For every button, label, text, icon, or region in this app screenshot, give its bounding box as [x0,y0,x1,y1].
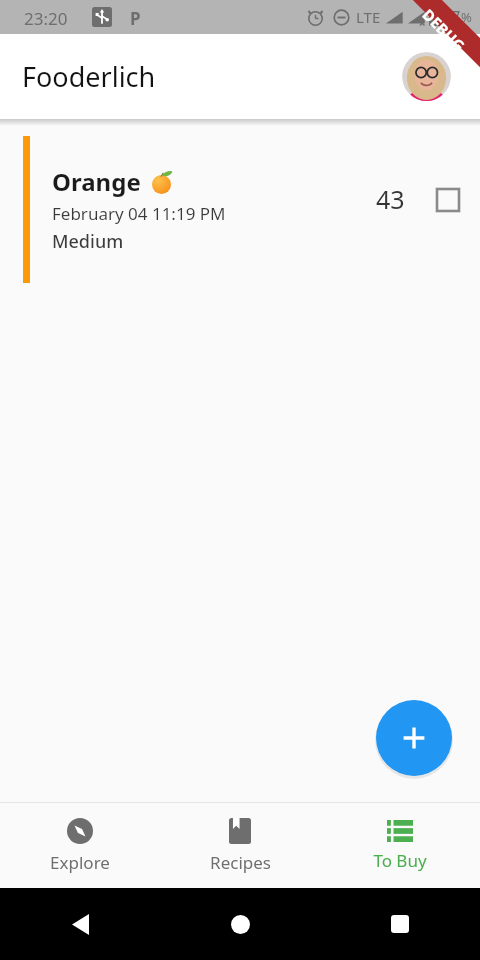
button[interactable]: Profile [402,52,451,101]
staticText: 43 [376,182,405,216]
staticText: DEBUG [418,4,469,55]
staticText: February 04 11:19 PM [52,202,226,225]
staticText: P [130,7,141,30]
staticText: Medium [52,229,124,254]
button[interactable]: Explore [0,803,160,888]
button[interactable]: Recipes [160,803,320,888]
button[interactable]: Orange [0,119,480,299]
staticText: Recipes [210,851,271,874]
staticText: 23:20 [24,7,68,30]
button[interactable]: Back [60,904,100,944]
staticText: LTE [356,7,381,27]
staticText: % [461,8,472,26]
staticText: 87 [442,6,461,28]
staticText: Orange [52,165,141,198]
button[interactable]: Recent apps [380,904,420,944]
button[interactable]: Add item [376,700,452,776]
button[interactable]: To Buy [320,803,480,888]
staticText: Explore [50,851,110,874]
staticText: Fooderlich [22,58,156,95]
staticText: To Buy [373,849,427,872]
button[interactable]: Home [220,904,260,944]
button[interactable]: Toggle bought [431,183,465,217]
